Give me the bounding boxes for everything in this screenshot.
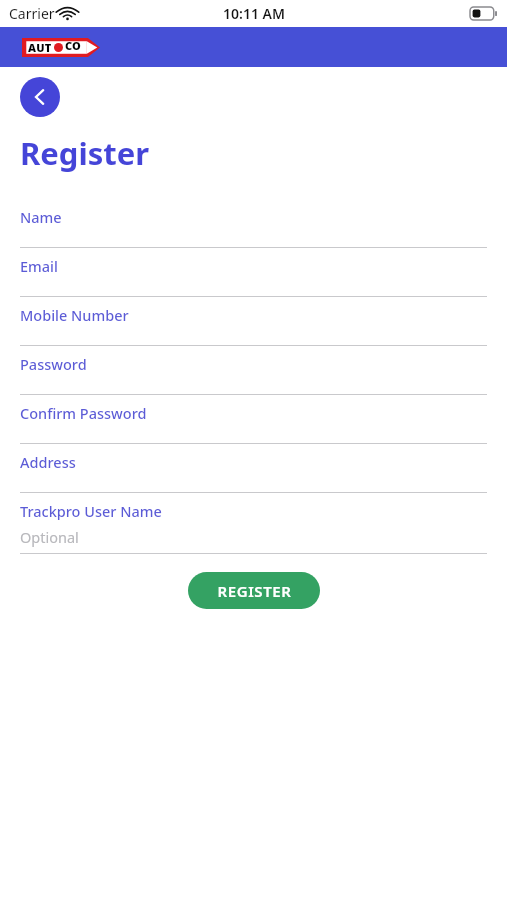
button[interactable]: Address: [20, 444, 487, 493]
button[interactable]: Trackpro User Name: [20, 493, 487, 554]
staticText: Password: [20, 354, 87, 374]
button[interactable]: Back: [20, 77, 60, 117]
button[interactable]: Password: [20, 346, 487, 395]
staticText: COP: [65, 38, 86, 57]
staticText: Name: [20, 207, 62, 227]
staticText: Confirm Password: [20, 403, 147, 423]
staticText: Register: [20, 132, 150, 174]
button[interactable]: REGISTER: [188, 572, 320, 609]
staticText: Address: [20, 452, 76, 472]
button[interactable]: Confirm Password: [20, 395, 487, 444]
button[interactable]: Mobile Number: [20, 297, 487, 346]
staticText: Trackpro User Name: [20, 501, 162, 521]
staticText: Carrier: [9, 4, 55, 23]
button[interactable]: Name: [20, 199, 487, 248]
button[interactable]: Email: [20, 248, 487, 297]
staticText: Optional: [20, 527, 79, 547]
staticText: 10:11 AM: [223, 4, 285, 23]
staticText: AUT: [28, 40, 52, 55]
staticText: Mobile Number: [20, 305, 129, 325]
staticText: REGISTER: [217, 581, 292, 601]
staticText: Email: [20, 256, 58, 276]
